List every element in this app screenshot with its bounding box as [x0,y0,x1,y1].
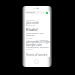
staticText: Full name [26,24,36,27]
button[interactable]: ACCOUNT [25,11,50,57]
button[interactable]: Settings [25,11,50,14]
staticText: john.smith [26,21,40,25]
staticText: Terms of service [26,53,48,57]
button[interactable]: Home [34,59,39,64]
staticText: Khalid [26,27,38,32]
staticText: Privacy [26,48,33,51]
staticText: E-mail [26,37,33,40]
staticText: Downloads and storage [26,31,51,37]
staticText: Reset [26,34,32,37]
staticText: Settings [26,11,35,14]
staticText: ACCOUNT [26,19,36,22]
staticText: johnsmith2019@example.com [26,40,51,47]
staticText: Notification settings [26,45,49,48]
